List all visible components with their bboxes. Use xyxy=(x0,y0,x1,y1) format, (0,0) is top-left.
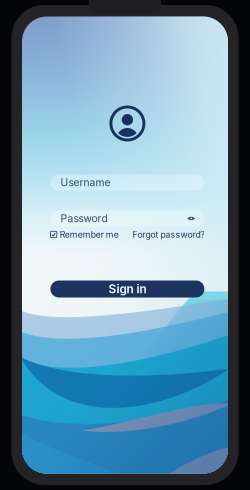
staticText: Username xyxy=(60,176,110,189)
button[interactable]: Forgot password? xyxy=(132,229,204,240)
staticText: Password xyxy=(60,212,107,225)
button[interactable]: Sign in xyxy=(50,280,204,297)
staticText: Sign in xyxy=(108,282,146,296)
button[interactable]: Password xyxy=(50,210,204,226)
button[interactable]: Username xyxy=(50,174,204,190)
button[interactable]: Remember me xyxy=(50,229,119,240)
staticText: Remember me xyxy=(60,229,119,240)
staticText: Forgot password? xyxy=(132,229,204,240)
